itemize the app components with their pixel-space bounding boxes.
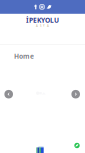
- button[interactable]: Previous slide: [4, 90, 13, 98]
- button[interactable]: Instagram: [40, 4, 44, 9]
- staticText: İPEKYOLU: [26, 16, 59, 25]
- staticText: A S Y A: [36, 24, 49, 28]
- button[interactable]: Facebook: [33, 4, 37, 9]
- button[interactable]: Twitter: [47, 4, 52, 9]
- button[interactable]: İpekyolu Asya home: [0, 15, 85, 28]
- button[interactable]: Next slide: [71, 90, 80, 98]
- button[interactable]: WhatsApp: [74, 143, 80, 148]
- staticText: Home: [14, 52, 34, 61]
